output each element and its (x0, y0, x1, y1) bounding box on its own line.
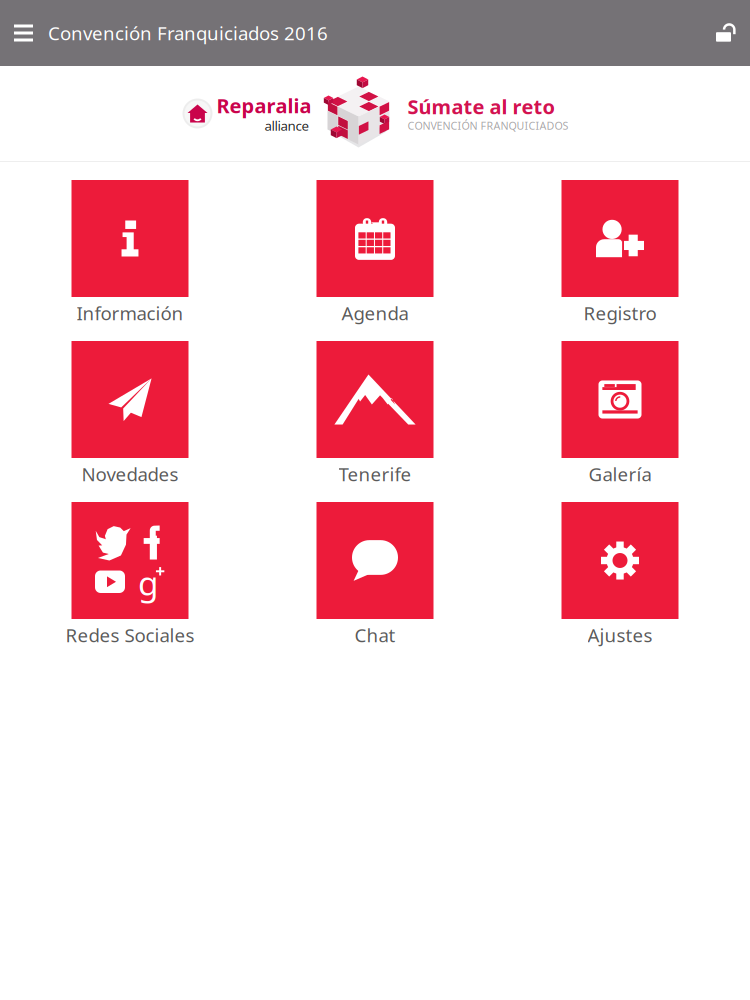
staticText: Ajustes (587, 623, 652, 647)
staticText: Registro (583, 301, 656, 325)
button[interactable]: Información (7, 180, 252, 325)
button[interactable]: Ajustes (497, 502, 742, 647)
staticText: alliance (264, 117, 309, 134)
button[interactable]: g (7, 502, 252, 647)
button[interactable]: Menu (0, 12, 48, 53)
button[interactable]: Registro (497, 180, 742, 325)
staticText: Novedades (81, 462, 178, 486)
staticText: Convención Franquiciados 2016 (48, 21, 328, 45)
staticText: Súmate al reto (407, 93, 555, 120)
staticText: Información (76, 301, 183, 325)
button[interactable]: Chat (252, 502, 497, 647)
staticText: Reparalia (216, 92, 311, 119)
staticText: Galería (588, 462, 651, 486)
button[interactable]: Lock (716, 10, 750, 56)
button[interactable]: Agenda (252, 180, 497, 325)
staticText: Redes Sociales (65, 623, 194, 647)
staticText: g (138, 560, 159, 605)
staticText: Tenerife (338, 462, 411, 486)
button[interactable]: Galería (497, 341, 742, 486)
staticText: Agenda (341, 301, 408, 325)
staticText: Chat (354, 623, 395, 647)
staticText: CONVENCIÓN FRANQUICIADOS (407, 118, 568, 133)
button[interactable]: Novedades (7, 341, 252, 486)
button[interactable]: Tenerife (252, 341, 497, 486)
